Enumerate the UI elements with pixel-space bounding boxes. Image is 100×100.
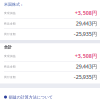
button[interactable]: 米国株式 — [0, 1, 100, 8]
staticText: 買付金額 — [4, 32, 16, 36]
button[interactable]: 損益の計算方法について — [0, 88, 100, 100]
staticText: -25,935円 — [74, 73, 97, 81]
staticText: 商品金額 — [4, 22, 16, 25]
staticText: 米国株式 — [4, 2, 20, 7]
staticText: › — [21, 2, 22, 7]
staticText: +3,508円 — [75, 9, 97, 17]
staticText: +3,508円 — [75, 52, 97, 60]
staticText: 29,443円 — [76, 20, 97, 27]
staticText: 29,443円 — [76, 63, 97, 70]
staticText: 実現損益 — [4, 11, 16, 15]
staticText: 買付金額 — [4, 75, 16, 79]
staticText: -25,935円 — [74, 30, 97, 38]
staticText: 商品金額 — [4, 65, 16, 68]
staticText: 実現損益 — [4, 54, 16, 58]
staticText: 損益の計算方法について — [9, 95, 53, 99]
staticText: 合計 — [4, 45, 12, 50]
